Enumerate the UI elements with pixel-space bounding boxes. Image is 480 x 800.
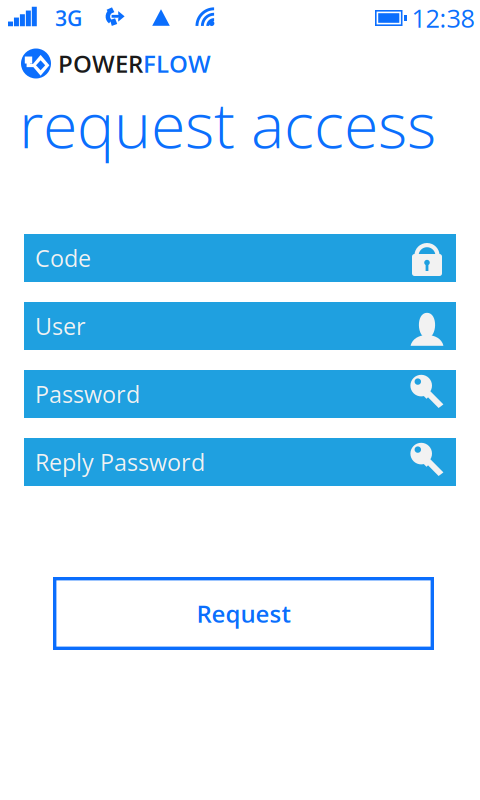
button[interactable]: Reply Password	[24, 438, 456, 486]
staticText: 3G	[55, 3, 82, 33]
button[interactable]: User	[24, 302, 456, 350]
staticText: Reply Password	[35, 446, 205, 478]
staticText: Code	[35, 242, 91, 274]
staticText: FLOW	[143, 47, 211, 80]
staticText: POWER	[58, 47, 143, 80]
button[interactable]: Password	[24, 370, 456, 418]
staticText: 12:38	[411, 1, 474, 35]
button[interactable]: Request	[53, 577, 434, 650]
button[interactable]: Code	[24, 234, 456, 282]
staticText: User	[35, 310, 86, 342]
staticText: request access	[19, 81, 436, 167]
staticText: Request	[196, 597, 290, 630]
staticText: Password	[35, 378, 140, 410]
